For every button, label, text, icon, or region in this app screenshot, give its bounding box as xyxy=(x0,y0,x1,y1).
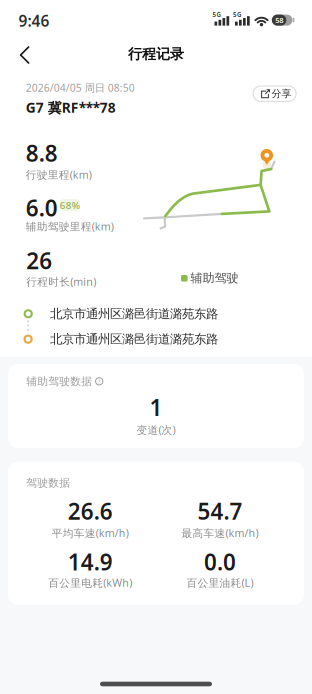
staticText: 驾驶数据 xyxy=(26,476,70,490)
staticText: 14.9 xyxy=(68,546,113,577)
staticText: 6.0 xyxy=(26,192,58,223)
staticText: 行程记录 xyxy=(128,45,184,63)
staticText: G7 冀RF***78 xyxy=(26,98,116,117)
staticText: 1 xyxy=(149,392,162,422)
staticText: 0.0 xyxy=(204,546,236,577)
staticText: 2026/04/05 周日 08:50 xyxy=(26,80,135,95)
staticText: 辅助驾驶数据 xyxy=(26,374,92,388)
button[interactable]: 辅助驾驶数据 xyxy=(26,374,103,388)
staticText: 辅助驾驶 xyxy=(190,270,238,286)
staticText: ? xyxy=(98,377,101,385)
staticText: 分享 xyxy=(272,87,292,100)
staticText: 平均车速(km/h) xyxy=(52,526,129,540)
button[interactable]: 返回 xyxy=(4,35,48,75)
staticText: 58 xyxy=(275,15,283,25)
staticText: 8.8 xyxy=(26,138,58,168)
staticText: 行驶里程(km) xyxy=(26,167,92,182)
staticText: 26 xyxy=(26,245,52,276)
staticText: 68% xyxy=(60,199,80,212)
staticText: 最高车速(km/h) xyxy=(181,526,258,540)
staticText: 北京市通州区潞邑街道潞苑东路 xyxy=(50,331,218,347)
staticText: 辅助驾驶里程(km) xyxy=(26,219,114,233)
staticText: 北京市通州区潞邑街道潞苑东路 xyxy=(50,306,218,322)
staticText: 5G xyxy=(212,10,220,19)
staticText: 百公里油耗(L) xyxy=(186,575,253,590)
staticText: 5G xyxy=(233,10,241,19)
staticText: 行程时长(min) xyxy=(26,274,96,289)
staticText: 9:46 xyxy=(18,10,49,31)
button[interactable]: 分享 xyxy=(253,85,297,102)
staticText: 百公里电耗(kWh) xyxy=(48,575,132,590)
staticText: 54.7 xyxy=(197,496,242,526)
staticText: 26.6 xyxy=(68,496,113,526)
staticText: 变道(次) xyxy=(136,422,175,437)
